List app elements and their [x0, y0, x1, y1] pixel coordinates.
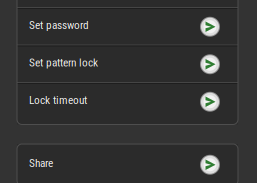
button[interactable]: Lock timeout — [17, 84, 238, 119]
button[interactable]: Set pattern lock — [17, 46, 238, 82]
button[interactable]: Share — [17, 147, 238, 182]
staticText: Set password — [29, 19, 89, 32]
button[interactable]: Set password — [17, 9, 238, 44]
staticText: Share — [29, 157, 53, 170]
staticText: Set pattern lock — [29, 56, 98, 69]
staticText: Lock timeout — [29, 94, 87, 107]
